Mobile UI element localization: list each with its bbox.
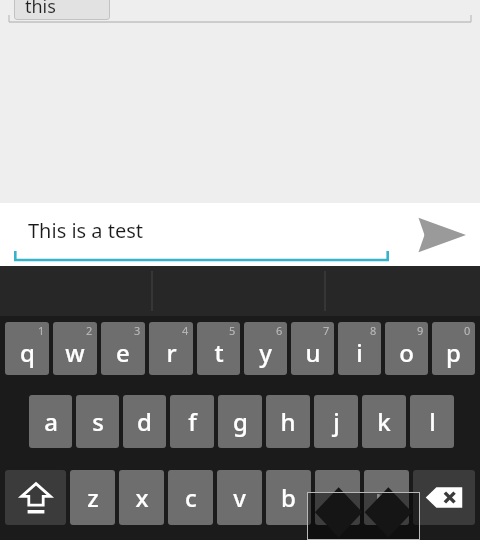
staticText: n bbox=[330, 481, 346, 514]
button[interactable]: w bbox=[53, 322, 97, 375]
staticText: 5 bbox=[229, 323, 236, 338]
staticText: p bbox=[446, 336, 461, 369]
button[interactable]: k bbox=[362, 395, 406, 448]
staticText: y bbox=[259, 336, 272, 369]
staticText: b bbox=[281, 481, 296, 514]
staticText: a bbox=[44, 405, 58, 438]
button[interactable]: v bbox=[217, 470, 262, 525]
button[interactable]: r bbox=[149, 322, 193, 375]
staticText: 6 bbox=[276, 323, 283, 338]
button[interactable]: p bbox=[432, 322, 475, 375]
staticText: This is a test bbox=[28, 217, 144, 244]
staticText: k bbox=[377, 405, 391, 438]
button[interactable]: z bbox=[70, 470, 115, 525]
staticText: f bbox=[188, 405, 197, 438]
staticText: i bbox=[356, 336, 363, 369]
staticText: r bbox=[166, 336, 177, 369]
staticText: h bbox=[280, 405, 296, 438]
staticText: 8 bbox=[370, 323, 377, 338]
button[interactable]: Shift bbox=[5, 470, 66, 525]
button[interactable]: q bbox=[5, 322, 49, 375]
staticText: this bbox=[25, 0, 56, 19]
staticText: 9 bbox=[417, 323, 424, 338]
button[interactable]: j bbox=[314, 395, 358, 448]
button[interactable]: a bbox=[29, 395, 72, 448]
staticText: j bbox=[333, 405, 340, 438]
staticText: m bbox=[375, 481, 398, 514]
staticText: c bbox=[185, 481, 197, 514]
staticText: e bbox=[116, 336, 130, 369]
staticText: o bbox=[399, 336, 414, 369]
staticText: z bbox=[87, 481, 99, 514]
staticText: l bbox=[429, 405, 436, 438]
button[interactable]: this bbox=[14, 0, 110, 20]
staticText: 2 bbox=[86, 323, 93, 338]
button[interactable]: This is a test bbox=[14, 203, 389, 266]
button[interactable]: i bbox=[338, 322, 381, 375]
staticText: w bbox=[65, 336, 85, 369]
staticText: t bbox=[214, 336, 224, 369]
button[interactable]: o bbox=[385, 322, 428, 375]
button[interactable]: f bbox=[170, 395, 214, 448]
button[interactable]: x bbox=[119, 470, 164, 525]
button[interactable]: l bbox=[410, 395, 454, 448]
staticText: u bbox=[305, 336, 321, 369]
button[interactable]: d bbox=[123, 395, 166, 448]
button[interactable]: y bbox=[244, 322, 287, 375]
button[interactable]: c bbox=[168, 470, 213, 525]
staticText: d bbox=[137, 405, 152, 438]
button[interactable]: g bbox=[218, 395, 262, 448]
staticText: 0 bbox=[464, 323, 471, 338]
staticText: x bbox=[135, 481, 149, 514]
button[interactable]: b bbox=[266, 470, 311, 525]
button[interactable]: m bbox=[364, 470, 409, 525]
button[interactable]: e bbox=[101, 322, 145, 375]
button[interactable]: t bbox=[197, 322, 240, 375]
button[interactable]: Send bbox=[402, 203, 480, 266]
staticText: 4 bbox=[182, 323, 189, 338]
button[interactable]: u bbox=[291, 322, 334, 375]
staticText: s bbox=[92, 405, 104, 438]
button[interactable]: s bbox=[76, 395, 119, 448]
button[interactable]: n bbox=[315, 470, 360, 525]
staticText: v bbox=[233, 481, 246, 514]
button[interactable]: h bbox=[266, 395, 310, 448]
staticText: 7 bbox=[323, 323, 330, 338]
staticText: q bbox=[20, 336, 35, 369]
staticText: 3 bbox=[134, 323, 141, 338]
staticText: g bbox=[233, 405, 248, 438]
staticText: 1 bbox=[38, 323, 45, 338]
button[interactable]: Backspace bbox=[413, 470, 475, 525]
